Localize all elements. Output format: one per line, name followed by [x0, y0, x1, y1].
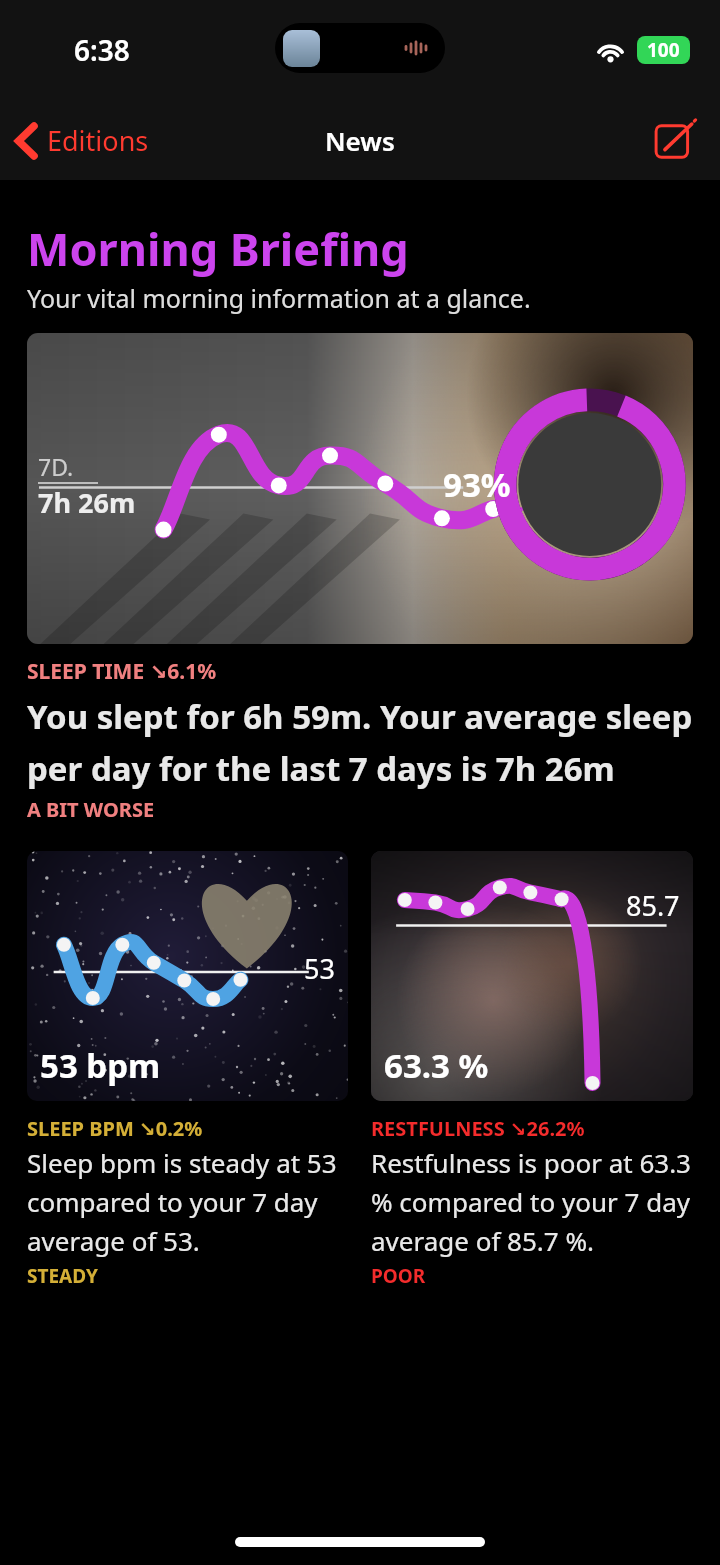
staticText: 85.7 [626, 887, 680, 924]
staticText: SLEEP BPM ↘0.2% [27, 1115, 203, 1142]
staticText: 53 bpm [40, 1043, 161, 1088]
button[interactable]: Compose [630, 107, 720, 173]
staticText: 53 [304, 950, 335, 987]
staticText: News [325, 123, 395, 158]
staticText: 7h 26m [38, 484, 136, 521]
button[interactable]: 53 [27, 851, 348, 1101]
staticText: Restfulness is poor at 63.3 % compared t… [371, 1145, 693, 1258]
staticText: 7D. [38, 451, 74, 482]
staticText: POOR [371, 1263, 426, 1289]
button[interactable]: 85.7 [371, 851, 693, 1101]
staticText: 6:38 [74, 31, 130, 69]
button[interactable]: Editions [0, 112, 163, 169]
staticText: RESTFULNESS ↘26.2% [371, 1115, 585, 1142]
staticText: Sleep bpm is steady at 53 compared to yo… [27, 1145, 348, 1258]
staticText: SLEEP TIME ↘6.1% [27, 657, 217, 686]
staticText: STEADY [27, 1263, 98, 1289]
staticText: A BIT WORSE [27, 796, 155, 823]
staticText: 93% [443, 462, 511, 507]
button[interactable]: 7D. [27, 333, 693, 644]
staticText: Editions [47, 122, 149, 159]
staticText: Your vital morning information at a glan… [27, 281, 531, 315]
staticText: 63.3 % [384, 1043, 489, 1088]
staticText: You slept for 6h 59m. Your average sleep… [27, 694, 693, 790]
staticText: 100 [647, 37, 680, 63]
staticText: Morning Briefing [27, 218, 409, 279]
